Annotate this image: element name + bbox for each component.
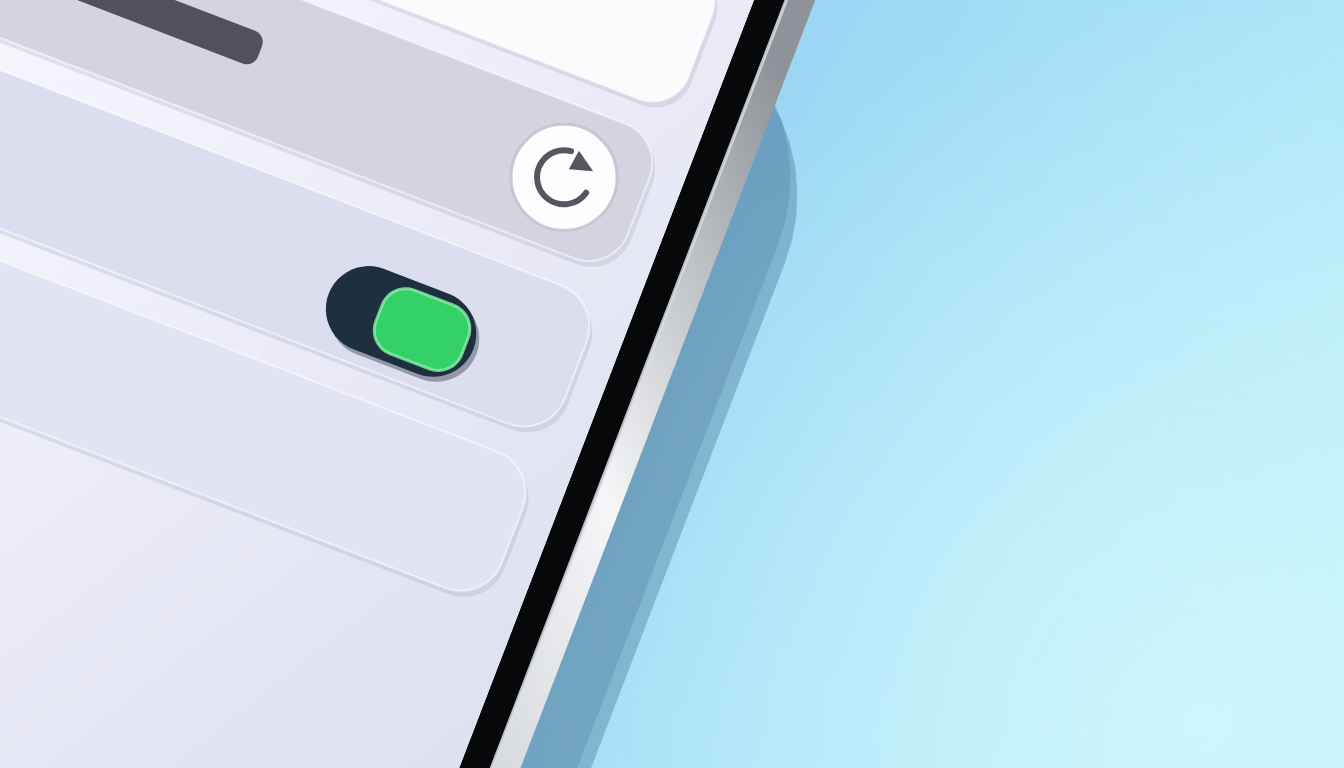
button[interactable]: Notifications toggle — [768, 202, 918, 300]
button[interactable]: List item one — [250, 24, 920, 152]
button[interactable]: List item three — [418, 188, 1068, 320]
button[interactable]: List item four — [430, 300, 990, 420]
button[interactable]: List item two — [322, 92, 1032, 232]
